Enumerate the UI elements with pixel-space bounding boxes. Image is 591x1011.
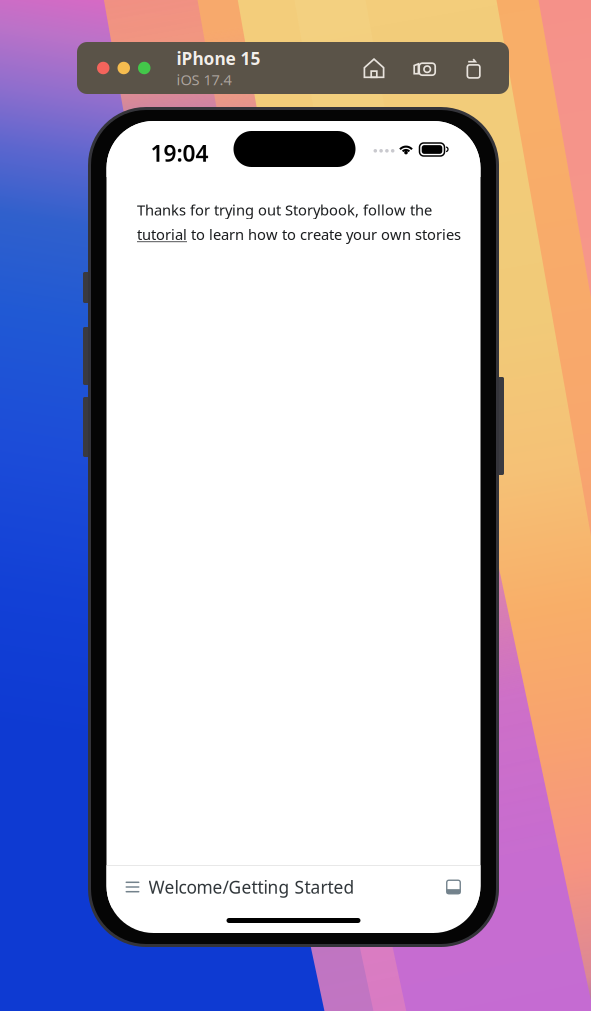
button[interactable]: Home bbox=[363, 57, 385, 78]
button[interactable]: Screenshot bbox=[413, 57, 435, 78]
button[interactable]: Welcome/Getting Started bbox=[106, 862, 354, 911]
staticText: iPhone 15 bbox=[176, 47, 260, 70]
button[interactable]: Record screen bbox=[463, 57, 483, 78]
staticText: Thanks for trying out Storybook, follow … bbox=[137, 200, 461, 244]
staticText: iOS 17.4 bbox=[176, 70, 231, 89]
button[interactable]: Zoom bbox=[138, 62, 150, 74]
staticText: Welcome/Getting Started bbox=[148, 875, 354, 898]
button[interactable]: Toggle addons panel bbox=[446, 867, 480, 907]
staticText: 19:04 bbox=[150, 138, 208, 168]
button[interactable]: Minimise bbox=[117, 62, 130, 74]
button[interactable]: Close bbox=[97, 62, 109, 74]
